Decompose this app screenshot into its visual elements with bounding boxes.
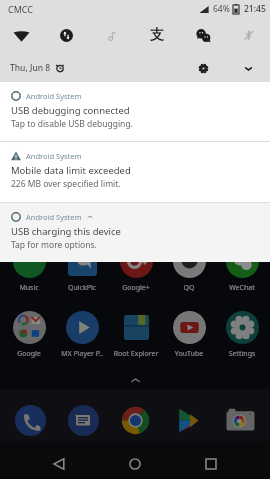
button[interactable]: All apps — [129, 374, 141, 386]
button[interactable]: QQ — [163, 245, 215, 293]
staticText: Google — [3, 349, 55, 359]
button[interactable]: WeChat — [190, 22, 216, 48]
button[interactable]: Root Explorer — [110, 311, 162, 359]
staticText: YouTube — [163, 349, 215, 359]
button[interactable]: Music — [3, 245, 55, 293]
staticText: Music — [3, 283, 55, 293]
staticText: Root Explorer — [110, 349, 162, 359]
button[interactable]: MX Player P.. — [56, 311, 108, 359]
staticText: 64% — [213, 3, 230, 15]
button[interactable]: Google — [3, 311, 55, 359]
button[interactable]: Android System — [0, 82, 270, 141]
button[interactable]: WeChat — [216, 245, 268, 293]
staticText: QQ — [163, 283, 215, 293]
button[interactable]: Android System — [0, 142, 270, 202]
staticText: Google+ — [110, 283, 162, 293]
staticText: 21:45 — [244, 3, 266, 15]
staticText: Settings — [216, 349, 268, 359]
button[interactable]: Bluetooth — [235, 22, 261, 48]
staticText: 226 MB over specified limit. — [11, 178, 121, 190]
staticText: MX Player P.. — [56, 349, 108, 359]
staticText: USB debugging connected — [11, 104, 130, 117]
button[interactable]: YouTube — [163, 311, 215, 359]
button[interactable]: Play Store — [169, 401, 207, 439]
staticText: Tap to disable USB debugging. — [11, 118, 133, 130]
staticText: Android System — [26, 151, 82, 161]
staticText: Android System — [26, 212, 82, 222]
button[interactable]: QuickPic — [56, 245, 108, 293]
staticText: 支 — [150, 26, 164, 44]
staticText: Tap for more options. — [11, 239, 97, 251]
button[interactable]: Wi-Fi — [8, 22, 34, 48]
button[interactable]: Camera — [221, 401, 259, 439]
button[interactable]: Recent apps — [197, 450, 225, 478]
button[interactable]: Data saver — [53, 22, 79, 48]
button[interactable]: Music — [99, 22, 125, 48]
staticText: USB charging this device — [11, 225, 121, 238]
staticText: WeChat — [216, 283, 268, 293]
button[interactable]: Messages — [64, 401, 102, 439]
staticText: Mobile data limit exceeded — [11, 164, 131, 177]
staticText: Thu, Jun 8 — [10, 62, 51, 74]
button[interactable]: Android System — [0, 203, 270, 262]
button[interactable]: Home — [121, 450, 149, 478]
staticText: QuickPic — [56, 283, 108, 293]
button[interactable]: Google+ — [110, 245, 162, 293]
button[interactable]: Back — [45, 450, 73, 478]
staticText: CMCC — [8, 3, 34, 15]
button[interactable]: Phone — [11, 401, 49, 439]
button[interactable]: Chrome — [116, 401, 154, 439]
button[interactable]: Settings — [216, 311, 268, 359]
button[interactable]: Alipay — [144, 22, 170, 48]
staticText: Android System — [26, 91, 82, 101]
button[interactable]: Expand quick settings — [237, 57, 259, 79]
button[interactable]: Settings — [192, 57, 214, 79]
